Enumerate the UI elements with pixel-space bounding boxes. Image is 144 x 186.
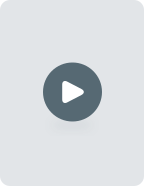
button[interactable]: Play [43,62,102,121]
